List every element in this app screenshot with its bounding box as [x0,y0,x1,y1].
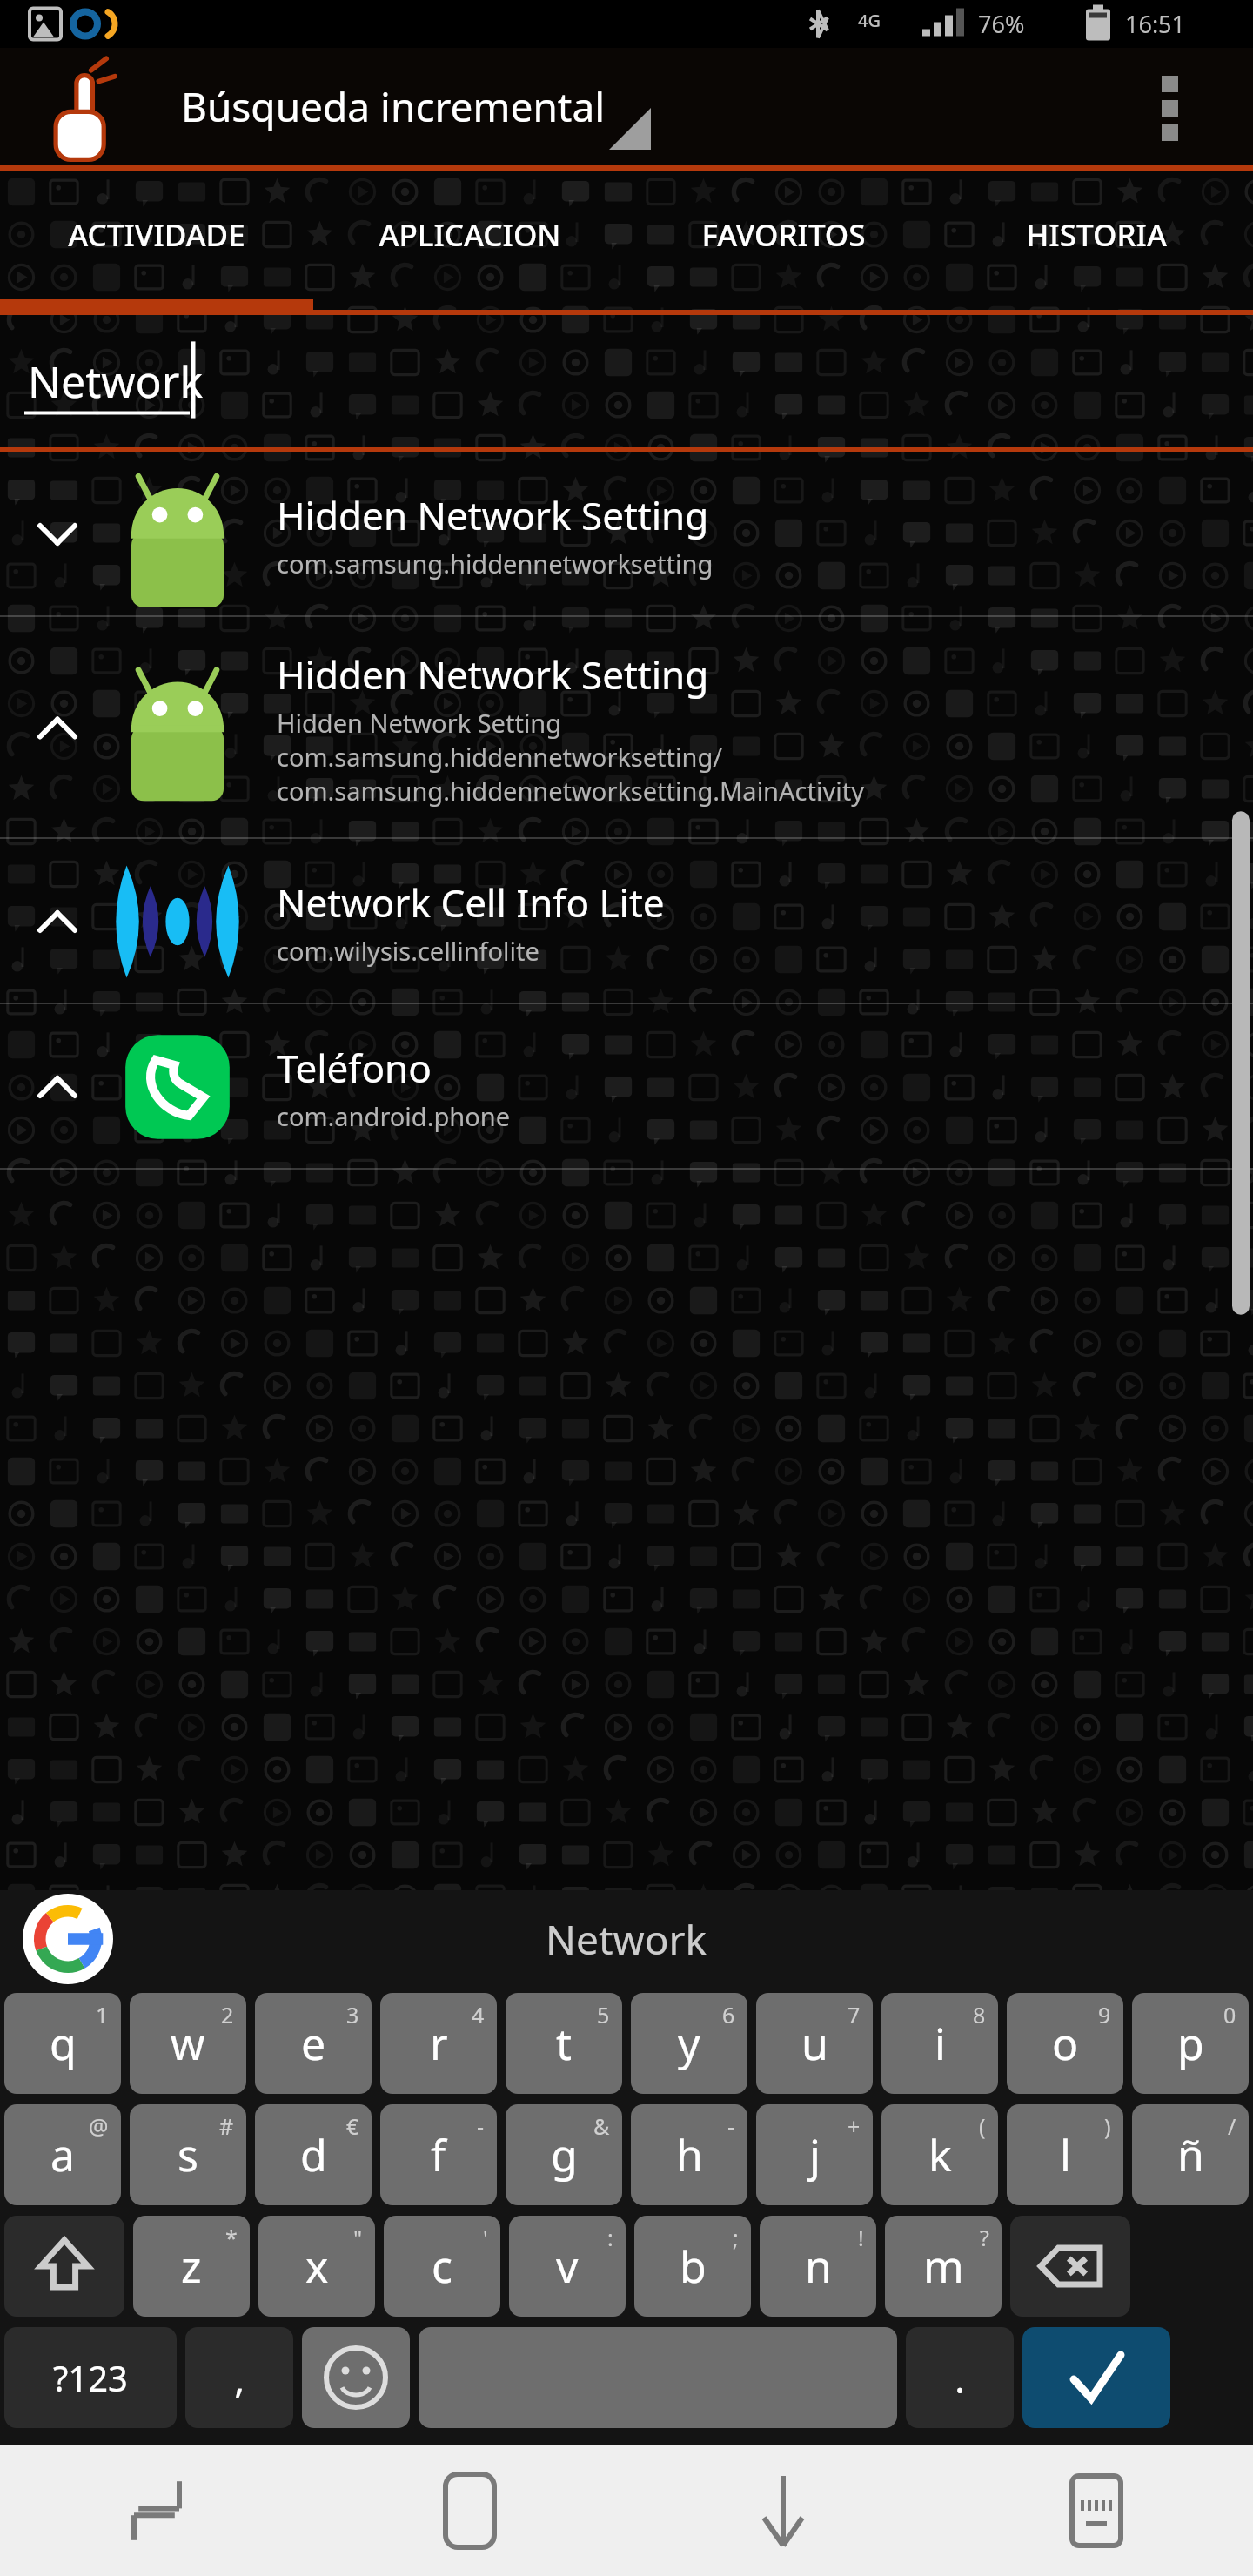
staticText: Hidden Network Setting [277,648,709,701]
staticText: ?123 [53,2354,128,2401]
staticText: 4G [858,9,881,32]
button[interactable]: p [1132,1993,1249,2094]
staticText: ' [483,2223,488,2252]
button[interactable]: z [133,2216,250,2317]
button[interactable]: , [185,2327,293,2428]
staticText: " [353,2223,363,2252]
staticText: Network Cell Info Lite [277,876,665,929]
staticText: / [1228,2111,1236,2141]
staticText: 7 [848,2000,861,2029]
staticText: € [346,2111,359,2141]
staticText: v [556,2237,579,2296]
staticText: k [928,2125,952,2184]
button[interactable]: b [634,2216,751,2317]
button[interactable]: Teléfono [0,1004,1253,1170]
staticText: c [432,2237,452,2296]
staticText: o [1052,2014,1079,2073]
button[interactable]: ?123 [4,2327,177,2428]
button[interactable]: i [881,1993,998,2094]
button[interactable]: Recientes [0,2445,313,2576]
staticText: p [1177,2014,1204,2073]
button[interactable]: Ocultar teclado [626,2445,940,2576]
button[interactable]: u [756,1993,873,2094]
staticText: ! [858,2223,864,2252]
staticText: n [805,2237,832,2296]
button[interactable]: y [631,1993,747,2094]
staticText: & [593,2111,610,2141]
button[interactable]: m [885,2216,1002,2317]
staticText: 0 [1223,2000,1236,2029]
staticText: t [556,2014,573,2073]
button[interactable]: Inicio [313,2445,626,2576]
button[interactable]: s [130,2104,246,2205]
staticText: a [50,2125,76,2184]
staticText: Hidden Network Setting [277,489,709,541]
button[interactable]: f [380,2104,497,2205]
button[interactable]: ñ [1132,2104,1249,2205]
button[interactable]: ACTIVIDADE [0,171,313,299]
button[interactable]: Emoji [302,2327,410,2428]
button[interactable]: . [906,2327,1014,2428]
button[interactable]: c [384,2216,500,2317]
staticText: Network [546,1912,707,1967]
button[interactable]: APLICACION [313,171,626,299]
staticText: Búsqueda incremental [181,79,606,134]
button[interactable]: j [756,2104,873,2205]
staticText: 16:51 [1125,8,1186,40]
staticText: u [801,2014,828,2073]
staticText: com.android.phone [277,1099,510,1133]
staticText: i [935,2014,946,2073]
staticText: z [181,2237,202,2296]
staticText: 6 [722,2000,735,2029]
button[interactable]: Más opciones [1149,48,1253,165]
staticText: 3 [346,2000,359,2029]
button[interactable]: w [130,1993,246,2094]
button[interactable]: k [881,2104,998,2205]
button[interactable]: Intro [1022,2327,1170,2428]
button[interactable]: l [1007,2104,1123,2205]
button[interactable]: Espacio [419,2327,897,2428]
staticText: ; [733,2223,739,2252]
staticText: d [300,2125,327,2184]
button[interactable]: Hidden Network Setting [0,452,1253,617]
staticText: - [477,2111,485,2141]
staticText: + [848,2111,861,2141]
staticText: com.samsung.hiddennetworksetting.MainAct… [277,774,864,808]
staticText: m [923,2237,964,2296]
button[interactable]: o [1007,1993,1123,2094]
button[interactable]: n [760,2216,876,2317]
button[interactable]: x [258,2216,375,2317]
staticText: com.samsung.hiddennetworksetting/ [277,740,723,774]
button[interactable]: g [506,2104,622,2205]
button[interactable]: r [380,1993,497,2094]
staticText: ? [980,2223,989,2252]
staticText: Hidden Network Setting [277,706,562,740]
button[interactable]: FAVORITOS [626,171,940,299]
button[interactable]: v [509,2216,626,2317]
button[interactable]: HISTORIA [940,171,1253,299]
staticText: ñ [1177,2125,1204,2184]
staticText: l [1060,2125,1071,2184]
staticText: j [809,2125,821,2184]
staticText: # [219,2111,234,2141]
staticText: com.wilysis.cellinfolite [277,934,539,968]
button[interactable]: t [506,1993,622,2094]
staticText: , [234,2351,245,2405]
staticText: 76% [978,8,1025,40]
staticText: ( [979,2111,986,2141]
staticText: 8 [973,2000,986,2029]
button[interactable]: q [4,1993,121,2094]
button[interactable]: Network Cell Info Lite [0,839,1253,1004]
button[interactable]: Backspace [1010,2216,1130,2317]
staticText: g [551,2125,578,2184]
button[interactable]: a [4,2104,121,2205]
button[interactable]: e [255,1993,372,2094]
button[interactable]: Shift [4,2216,124,2317]
button[interactable]: Cambiar teclado [940,2445,1253,2576]
staticText: Network [28,352,204,411]
button[interactable]: Network [0,1890,1253,1988]
button[interactable]: Hidden Network Setting [0,617,1253,839]
button[interactable]: d [255,2104,372,2205]
staticText: q [50,2014,77,2073]
button[interactable]: h [631,2104,747,2205]
